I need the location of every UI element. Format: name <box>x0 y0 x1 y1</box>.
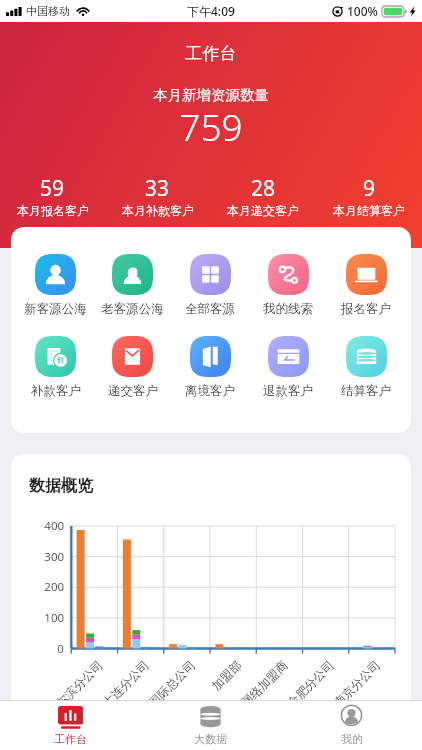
button[interactable]: 59 <box>0 174 105 218</box>
staticText: 退款客户 <box>263 383 313 399</box>
button[interactable]: 全部客源 <box>171 254 249 317</box>
button[interactable]: 退款客户 <box>249 336 327 399</box>
staticText: 老客源公海 <box>101 301 164 317</box>
staticText: 中国移动 <box>26 4 70 18</box>
button[interactable]: 28 <box>210 174 316 218</box>
staticText: 9 <box>363 174 376 203</box>
staticText: 本月结算客户 <box>333 203 405 218</box>
button[interactable]: 结算客户 <box>327 336 405 399</box>
button[interactable]: 递交客户 <box>94 336 171 399</box>
button[interactable]: 老客源公海 <box>94 254 171 317</box>
button[interactable]: 工作台 <box>0 701 140 750</box>
staticText: 本月新增资源数量 <box>0 86 422 104</box>
button[interactable]: 离境客户 <box>171 336 249 399</box>
button[interactable]: 新客源公海 <box>17 254 94 317</box>
staticText: 100% <box>347 3 378 19</box>
button[interactable]: 9 <box>316 174 422 218</box>
staticText: 补款客户 <box>31 383 81 399</box>
staticText: 结算客户 <box>341 383 391 399</box>
button[interactable]: 我的线索 <box>249 254 327 317</box>
staticText: 大数据 <box>194 732 227 746</box>
staticText: 递交客户 <box>108 383 158 399</box>
staticText: 本月报名客户 <box>17 203 89 218</box>
button[interactable]: 大数据 <box>140 701 281 750</box>
staticText: 下午4:09 <box>187 3 235 19</box>
staticText: 离境客户 <box>185 383 235 399</box>
staticText: 全部客源 <box>185 301 235 317</box>
staticText: 759 <box>0 101 422 151</box>
button[interactable]: 补款客户 <box>17 336 94 399</box>
staticText: 我的 <box>341 732 363 746</box>
staticText: 本月递交客户 <box>227 203 299 218</box>
staticText: 工作台 <box>54 732 87 746</box>
button[interactable]: 我的 <box>281 701 422 750</box>
staticText: 28 <box>251 174 276 203</box>
staticText: 59 <box>40 174 65 203</box>
staticText: 33 <box>145 174 170 203</box>
staticText: 本月补款客户 <box>122 203 194 218</box>
button[interactable]: 33 <box>105 174 210 218</box>
staticText: 工作台 <box>0 43 422 64</box>
staticText: 新客源公海 <box>24 301 87 317</box>
staticText: 数据概览 <box>29 476 93 496</box>
button[interactable]: 报名客户 <box>327 254 405 317</box>
staticText: 我的线索 <box>263 301 313 317</box>
staticText: 报名客户 <box>341 301 391 317</box>
